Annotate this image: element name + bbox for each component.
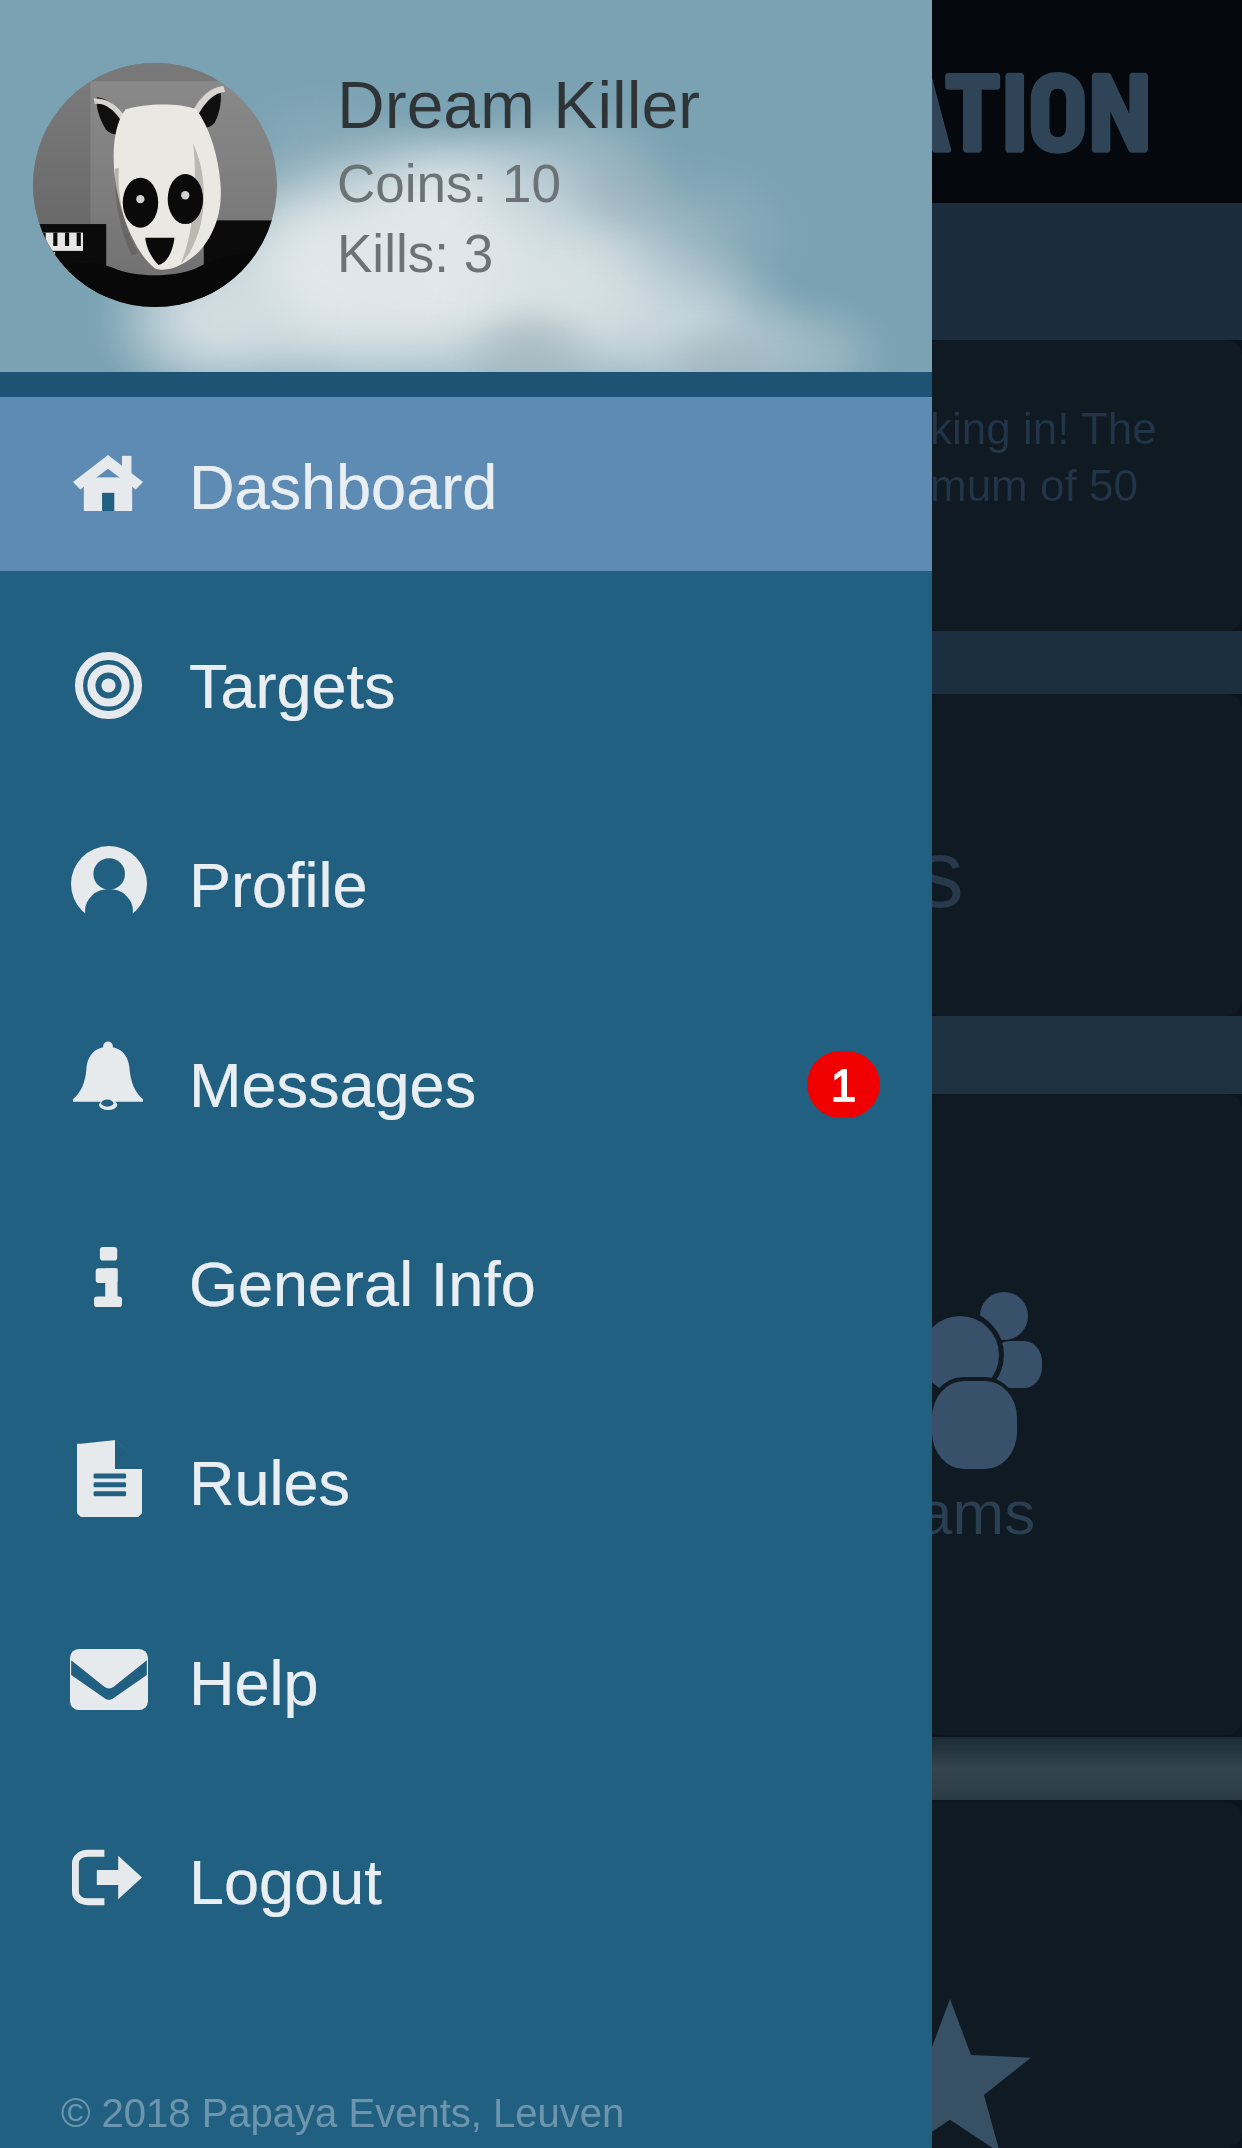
staticText: Logout [189, 1847, 382, 1917]
staticText: s [916, 820, 964, 927]
button[interactable]: General Info [0, 1184, 932, 1383]
staticText: Targets [189, 651, 396, 721]
staticText: mum of 50 [930, 461, 1138, 510]
staticText: Messages [189, 1050, 477, 1120]
staticText: Kills: 3 [337, 224, 494, 283]
button[interactable]: Messages [0, 985, 932, 1184]
button[interactable]: Rules [0, 1383, 932, 1582]
staticText: 1 [831, 1060, 857, 1110]
staticText: Dashboard [189, 452, 498, 522]
staticText: ATION [889, 42, 1153, 173]
button[interactable]: 1 unread message [807, 1051, 880, 1118]
staticText: © 2018 Papaya Events, Leuven [61, 2091, 625, 2136]
staticText: General Info [189, 1249, 536, 1319]
button[interactable]: Help [0, 1583, 932, 1782]
button[interactable]: Dashboard [0, 387, 932, 586]
staticText: Rules [189, 1448, 351, 1518]
staticText: ams [918, 1478, 1036, 1547]
staticText: Dream Killer [337, 68, 701, 142]
staticText: Coins: 10 [337, 154, 561, 213]
staticText: Help [189, 1648, 319, 1718]
button[interactable]: Targets [0, 586, 932, 785]
staticText: Profile [189, 850, 368, 920]
button[interactable]: Logout [0, 1782, 932, 1981]
button[interactable]: Profile [0, 785, 932, 984]
staticText: king in! The [930, 404, 1157, 453]
